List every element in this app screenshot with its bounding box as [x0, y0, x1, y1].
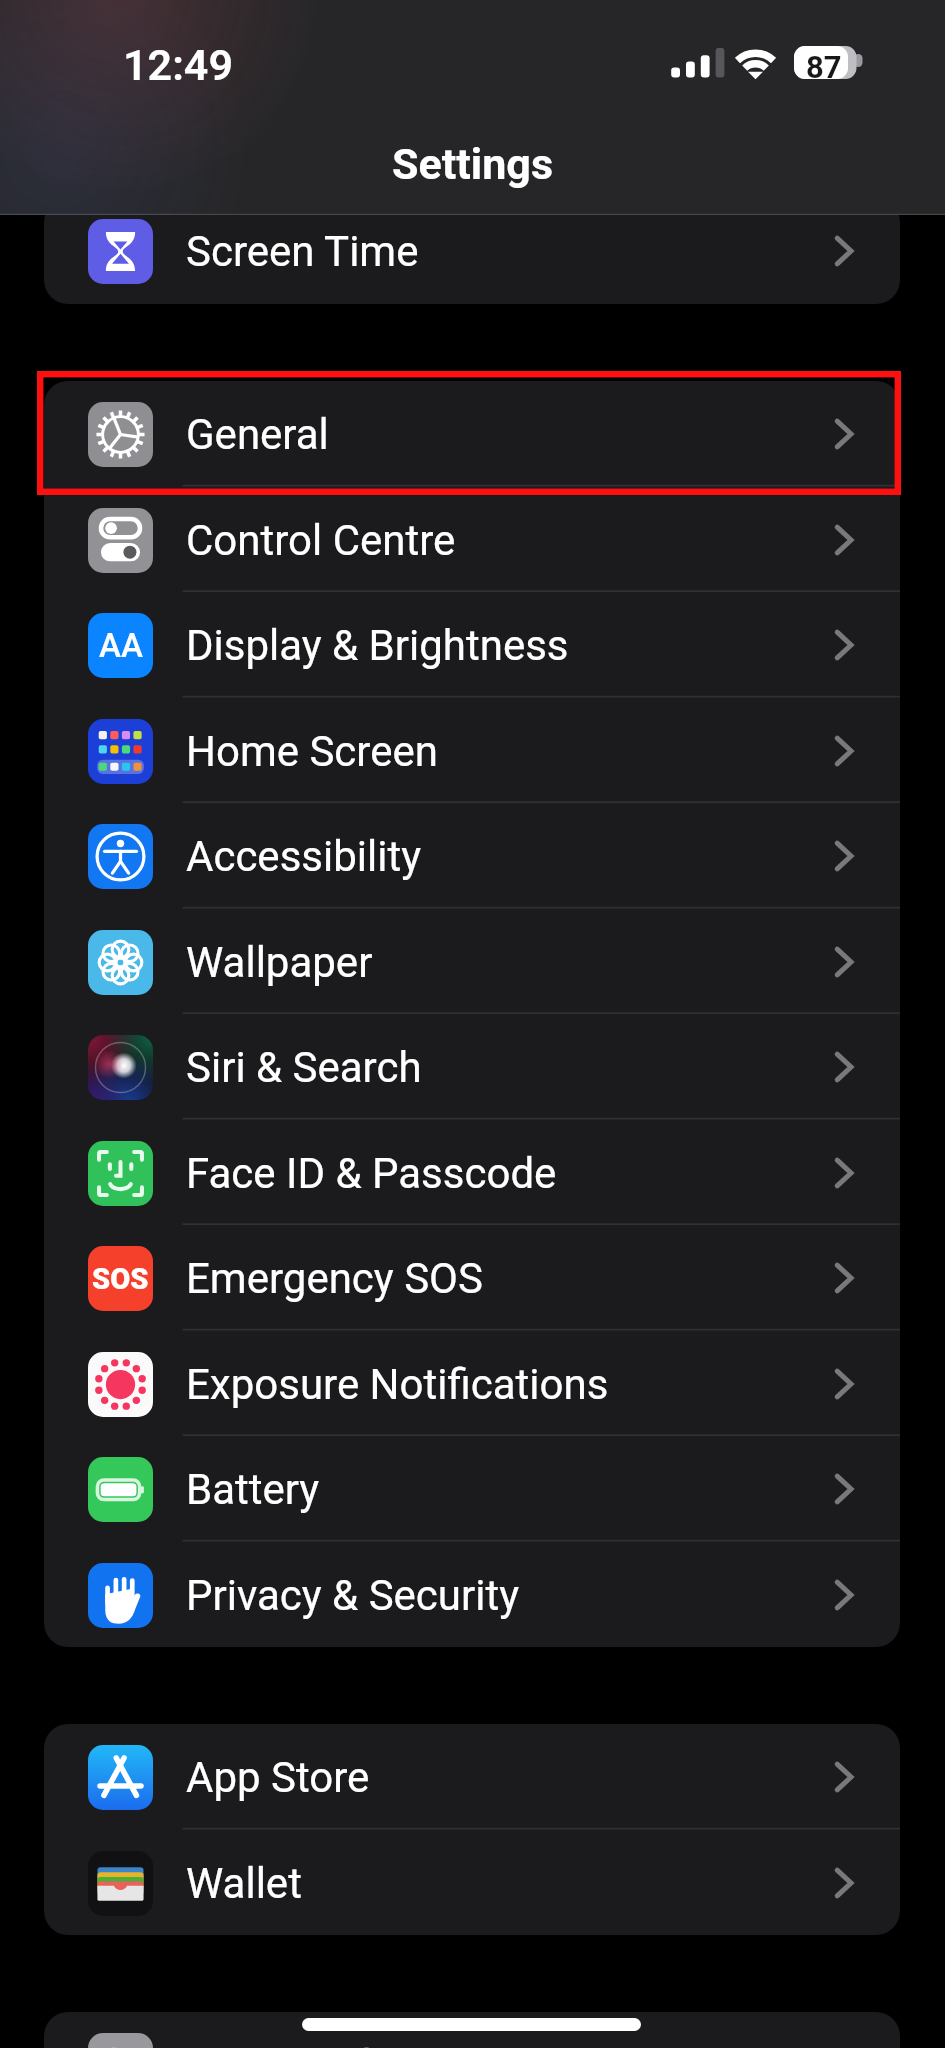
staticText: Emergency SOS	[186, 1254, 483, 1303]
button[interactable]: Face ID & Passcode	[44, 1120, 900, 1226]
button[interactable]: Exposure Notifications	[44, 1331, 900, 1437]
staticText: Face ID & Passcode	[186, 1149, 557, 1198]
button[interactable]: Control Centre	[44, 487, 900, 593]
staticText: Wallpaper	[186, 938, 373, 987]
staticText: General	[186, 410, 329, 459]
staticText: Control Centre	[186, 516, 456, 565]
staticText: App Store	[186, 1753, 370, 1802]
staticText: Privacy & Security	[186, 1571, 520, 1620]
staticText: SOS	[92, 1262, 149, 1296]
staticText: Wallet	[186, 1859, 302, 1908]
button[interactable]: Home Screen	[44, 698, 900, 804]
button[interactable]: General	[44, 381, 900, 487]
staticText: Passwords	[186, 2041, 394, 2048]
button[interactable]: AA	[44, 592, 900, 698]
staticText: Settings	[0, 139, 945, 189]
staticText: Battery	[186, 1465, 320, 1514]
button[interactable]: Wallet	[44, 1830, 900, 1935]
button[interactable]: Screen Time	[44, 198, 900, 304]
staticText: 87	[806, 49, 842, 85]
button[interactable]: Passwords	[44, 2012, 900, 2048]
button[interactable]: Accessibility	[44, 803, 900, 909]
staticText: Accessibility	[186, 832, 422, 881]
staticText: Exposure Notifications	[186, 1360, 609, 1409]
staticText: Display & Brightness	[186, 621, 569, 670]
staticText: Home Screen	[186, 727, 438, 776]
button[interactable]: Siri & Search	[44, 1014, 900, 1120]
button[interactable]: Wallpaper	[44, 909, 900, 1015]
staticText: Screen Time	[186, 227, 419, 276]
staticText: 12:49	[123, 40, 233, 90]
button[interactable]: Battery	[44, 1436, 900, 1542]
staticText: AA	[99, 626, 143, 665]
button[interactable]: SOS	[44, 1225, 900, 1331]
staticText: Siri & Search	[186, 1043, 422, 1092]
button[interactable]: Privacy & Security	[44, 1542, 900, 1647]
button[interactable]: App Store	[44, 1724, 900, 1830]
